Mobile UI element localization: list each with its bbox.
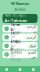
button[interactable]: 4 (2, 51, 37, 58)
staticText: Der Barmherzige (10, 35, 21, 46)
staticText: القدوس (27, 50, 36, 59)
staticText: Der Heilige (10, 54, 21, 62)
staticText: Name des Tages (4, 14, 25, 17)
staticText: 4 (6, 53, 8, 56)
staticText: 99 Namen (10, 1, 29, 6)
staticText: 2 (6, 35, 8, 39)
button[interactable]: 1 (2, 25, 37, 32)
staticText: Der Herrscher (10, 44, 23, 51)
staticText: Der Allerbarmer (10, 27, 21, 37)
button[interactable]: Name des Tages (2, 14, 37, 23)
button[interactable]: Mehr (27, 66, 40, 72)
staticText: Al-Malik (10, 40, 20, 44)
button[interactable]: Lernen (13, 66, 27, 72)
staticText: الرحيم (26, 35, 36, 39)
staticText: Mehr (31, 71, 35, 72)
staticText: الرحمن (26, 24, 36, 33)
staticText: 1 (6, 27, 8, 30)
staticText: Ar-Rahim (10, 28, 18, 35)
button[interactable]: 2 (2, 33, 37, 41)
staticText: الملك (28, 43, 36, 48)
staticText: Allahs (14, 7, 25, 12)
button[interactable]: 3 (2, 42, 37, 49)
staticText: Al-Quddus (10, 47, 21, 54)
staticText: 3 (6, 44, 8, 47)
button[interactable]: Namen (0, 66, 13, 72)
staticText: Ar-Rahman (10, 20, 20, 27)
staticText: Ar-Rahman (4, 18, 27, 23)
